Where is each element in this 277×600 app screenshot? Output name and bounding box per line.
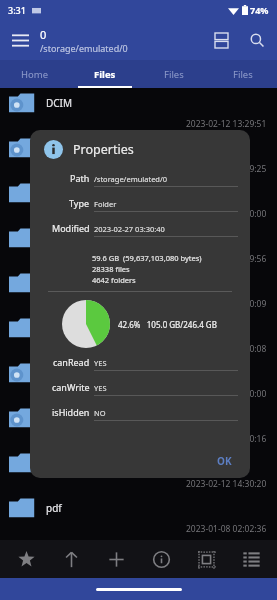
staticText: OK — [217, 454, 232, 468]
staticText: /storage/emulated/0 — [40, 42, 128, 54]
staticText: 2023-02-12 13:29:56 — [186, 253, 267, 265]
staticText: /storage/emulated/0 — [94, 174, 168, 184]
button[interactable]: OK — [199, 446, 250, 476]
staticText: Pictures — [46, 321, 84, 335]
staticText: 2023-02-12 13:30:09 — [186, 298, 267, 310]
button[interactable]: Add — [97, 540, 135, 578]
staticText: pdf — [46, 501, 62, 515]
staticText: 59.6 GB (59,637,103,080 bytes) — [92, 253, 202, 263]
staticText: NO — [94, 408, 106, 418]
staticText: 28338 files — [92, 264, 130, 274]
staticText: YES — [94, 358, 107, 368]
button[interactable]: View mode — [203, 22, 239, 58]
staticText: Ringtones — [46, 411, 94, 425]
staticText: Path — [70, 172, 90, 184]
staticText: 4642 folders — [92, 275, 136, 285]
staticText: YES — [94, 383, 107, 393]
button[interactable]: Notifications — [0, 448, 277, 493]
button[interactable]: Music — [0, 268, 277, 313]
staticText: 74% — [250, 4, 269, 16]
staticText: Properties — [73, 141, 134, 158]
button[interactable]: Files — [139, 60, 208, 88]
staticText: 2023-02-12 13:30:00 — [186, 388, 267, 400]
button[interactable]: Files — [208, 60, 277, 88]
staticText: 2023-02-12 13:29:51 — [186, 118, 267, 130]
button[interactable]: Podcasts — [0, 358, 277, 403]
staticText: 2023-02-12 14:30:20 — [186, 478, 267, 490]
staticText: Files — [164, 68, 184, 81]
staticText: Movies — [46, 231, 80, 245]
staticText: Type — [69, 197, 90, 209]
staticText: Documents — [46, 141, 100, 155]
button[interactable]: Select — [187, 540, 225, 578]
staticText: 2023-02-12 13:29:25 — [186, 163, 267, 175]
staticText: 2023-02-27 03:30:40 — [94, 224, 165, 234]
staticText: 42.6% 105.0 GB/246.4 GB — [118, 319, 217, 330]
staticText: Files — [233, 68, 253, 81]
staticText: Files — [94, 68, 116, 81]
button[interactable]: Home — [0, 60, 70, 88]
staticText: Folder — [94, 199, 117, 209]
staticText: canWrite — [52, 381, 90, 393]
staticText: isHidden — [52, 406, 90, 418]
button[interactable]: Menu — [0, 20, 40, 60]
button[interactable]: Movies — [0, 223, 277, 268]
button[interactable]: Files — [70, 60, 139, 88]
button[interactable]: Info — [142, 540, 180, 578]
staticText: 3:31 — [8, 4, 26, 16]
staticText: canRead — [53, 356, 90, 368]
staticText: Home — [21, 68, 49, 81]
button[interactable]: Favorite — [7, 540, 45, 578]
button[interactable]: Documents — [0, 133, 277, 178]
staticText: 2023-02-27 03:30:00 — [186, 208, 267, 220]
button[interactable]: pdf — [0, 493, 277, 538]
staticText: Modified — [52, 222, 90, 234]
staticText: 0 — [40, 27, 47, 42]
staticText: 2023-01-08 02:02:36 — [186, 523, 267, 535]
button[interactable]: Download — [0, 178, 277, 223]
button[interactable]: Up — [52, 540, 90, 578]
button[interactable]: Search — [239, 22, 275, 58]
staticText: 2023-02-12 13:30:16 — [186, 433, 267, 445]
button[interactable]: Ringtones — [0, 403, 277, 448]
staticText: DCIM — [46, 96, 73, 110]
button[interactable]: List — [232, 540, 270, 578]
button[interactable]: Pictures — [0, 313, 277, 358]
staticText: 2023-02-12 13:30:08 — [186, 343, 267, 355]
button[interactable]: DCIM — [0, 88, 277, 133]
